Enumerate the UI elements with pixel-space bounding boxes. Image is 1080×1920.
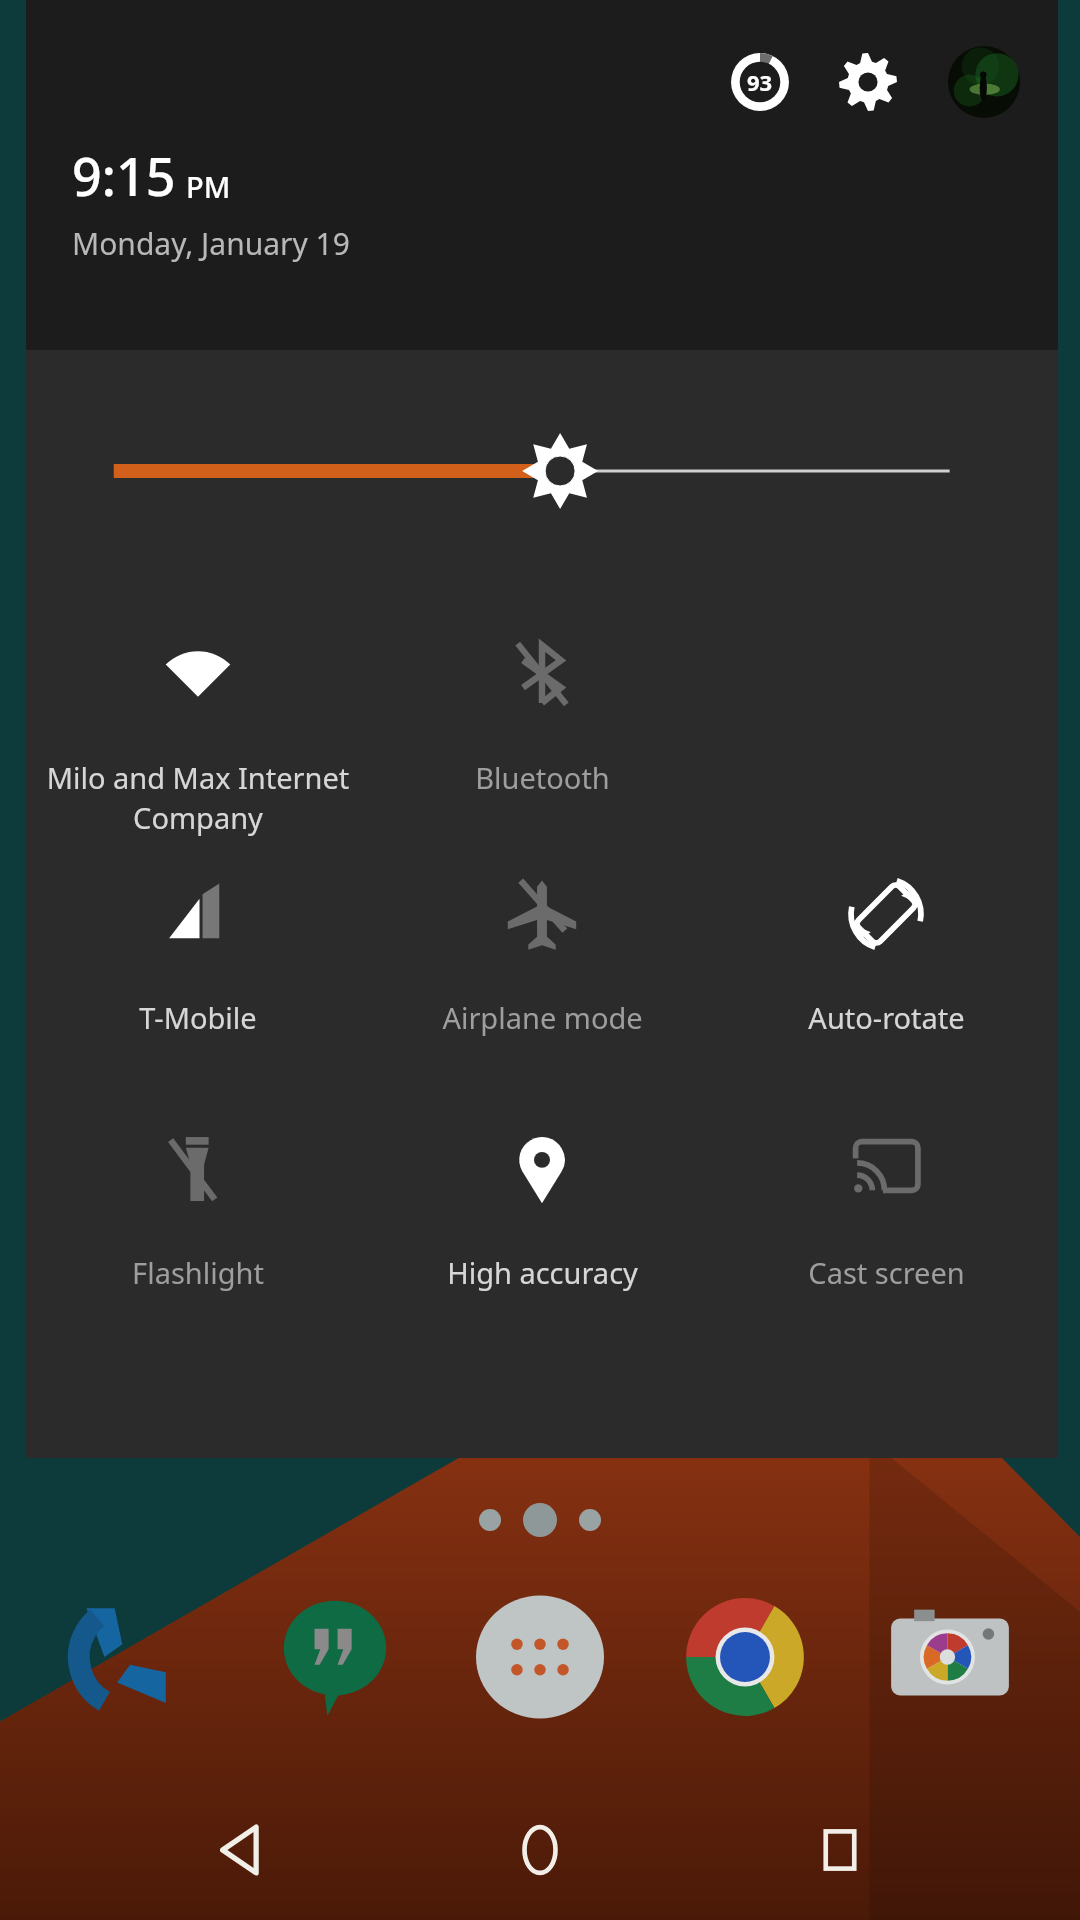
button[interactable]: Camera bbox=[875, 1582, 1025, 1732]
staticText: Cast screen bbox=[808, 1253, 965, 1292]
staticText: High accuracy bbox=[447, 1253, 638, 1292]
staticText: Auto-rotate bbox=[808, 998, 965, 1037]
button[interactable]: Hangouts bbox=[260, 1582, 410, 1732]
button[interactable]: Back bbox=[180, 1790, 300, 1910]
button[interactable]: User profile bbox=[944, 42, 1024, 122]
button[interactable]: T-Mobile bbox=[26, 846, 370, 1101]
staticText: Flashlight bbox=[132, 1253, 264, 1292]
button[interactable]: Milo and Max Internet Company bbox=[26, 606, 370, 846]
button[interactable]: High accuracy bbox=[370, 1101, 714, 1356]
button[interactable]: Bluetooth bbox=[370, 606, 714, 846]
button[interactable]: Home bbox=[480, 1790, 600, 1910]
button[interactable]: Auto-rotate bbox=[714, 846, 1058, 1101]
button[interactable]: Airplane mode bbox=[370, 846, 714, 1101]
button[interactable]: Brightness bbox=[26, 426, 1058, 516]
staticText: 93 bbox=[747, 67, 773, 97]
button[interactable]: Flashlight bbox=[26, 1101, 370, 1356]
button[interactable]: Apps bbox=[465, 1582, 615, 1732]
staticText: Bluetooth bbox=[475, 758, 610, 797]
button[interactable]: Cast screen bbox=[714, 1101, 1058, 1356]
staticText: 9:15 bbox=[72, 140, 176, 211]
staticText: Airplane mode bbox=[442, 998, 643, 1037]
staticText: Milo and Max Internet Company bbox=[32, 758, 364, 838]
staticText: Monday, January 19 bbox=[72, 223, 350, 264]
staticText: PM bbox=[186, 167, 231, 206]
button[interactable]: Battery 93 percent bbox=[720, 42, 800, 122]
button[interactable]: Settings bbox=[828, 42, 908, 122]
button[interactable]: Recents bbox=[780, 1790, 900, 1910]
button[interactable]: Chrome bbox=[670, 1582, 820, 1732]
button[interactable]: Phone bbox=[55, 1582, 205, 1732]
staticText: T-Mobile bbox=[139, 998, 257, 1037]
